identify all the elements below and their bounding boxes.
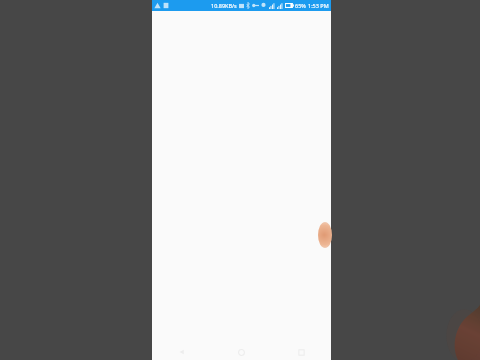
staticText: 1:53 PM (308, 2, 329, 9)
staticText: 10.89KB/s (211, 2, 237, 9)
staticText: 65% (295, 2, 306, 9)
